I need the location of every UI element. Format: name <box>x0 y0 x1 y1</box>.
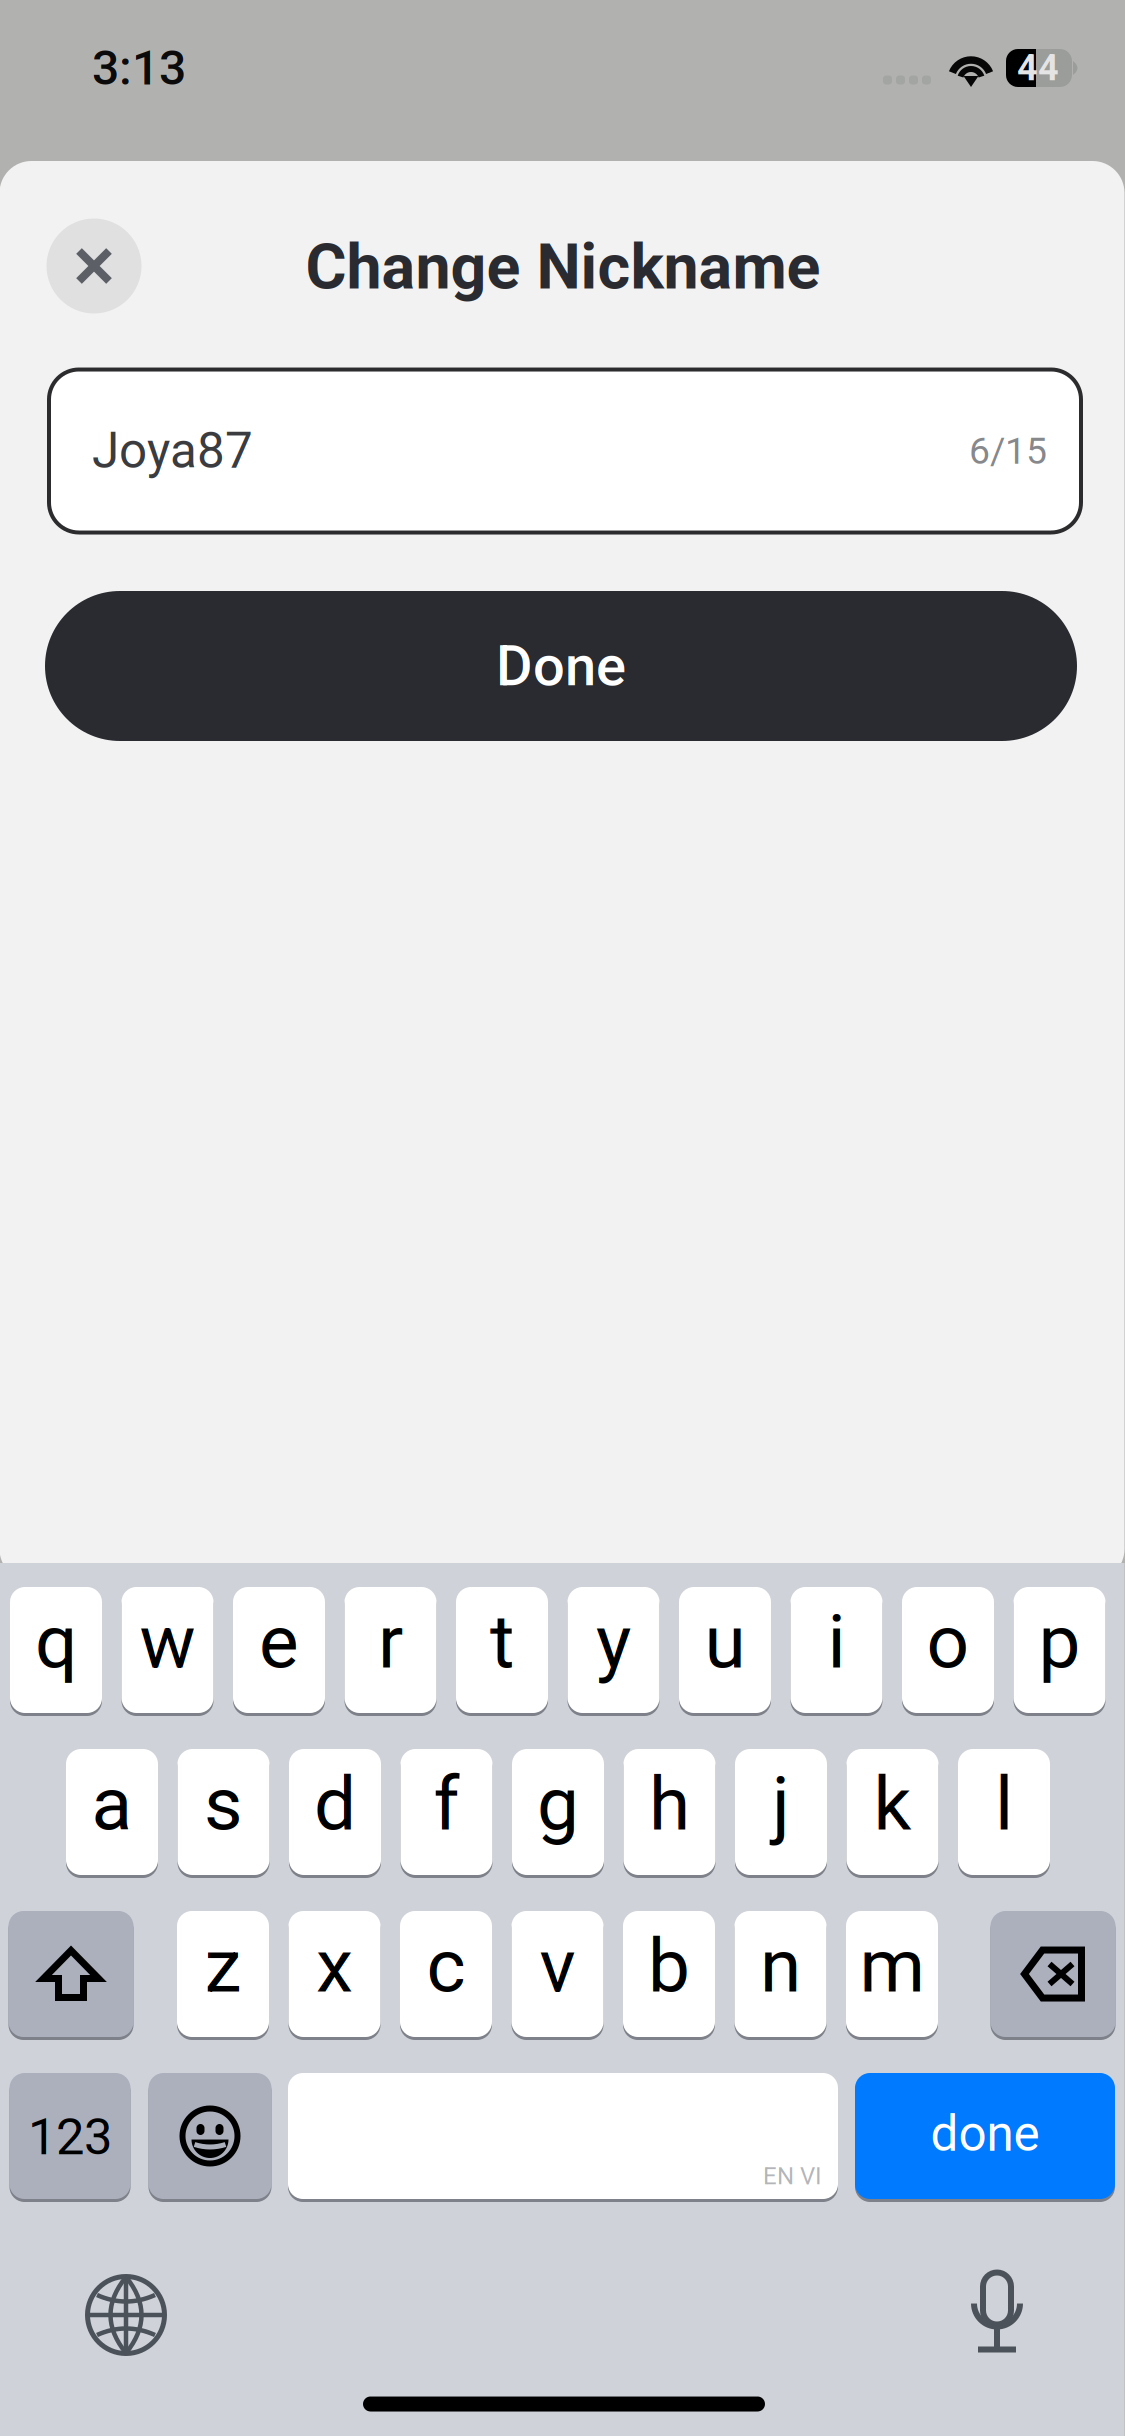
button[interactable]: w <box>121 1587 213 1713</box>
staticText: l <box>995 1760 1013 1848</box>
button[interactable]: done <box>855 2073 1115 2199</box>
button[interactable]: p <box>1013 1587 1105 1713</box>
button[interactable]: n <box>734 1911 826 2037</box>
staticText: Change Nickname <box>305 230 820 304</box>
staticText: k <box>873 1760 911 1848</box>
staticText: d <box>314 1760 356 1848</box>
staticText: x <box>316 1922 353 2010</box>
button[interactable]: Delete <box>990 1911 1115 2037</box>
staticText: p <box>1038 1598 1080 1686</box>
button[interactable]: v <box>511 1911 603 2037</box>
staticText: n <box>760 1922 801 2010</box>
button[interactable]: z <box>177 1911 269 2037</box>
button[interactable]: Done <box>45 591 1077 741</box>
button[interactable]: k <box>846 1749 938 1875</box>
staticText: v <box>539 1922 575 2010</box>
button[interactable]: m <box>846 1911 938 2037</box>
staticText: u <box>704 1598 745 1686</box>
button[interactable]: f <box>400 1749 492 1875</box>
button[interactable]: Close <box>46 218 141 313</box>
staticText: 44 <box>1017 47 1059 89</box>
button[interactable]: Space <box>288 2073 838 2199</box>
button[interactable]: x <box>288 1911 380 2037</box>
button[interactable]: c <box>400 1911 492 2037</box>
button[interactable]: s <box>177 1749 269 1875</box>
button[interactable]: y <box>567 1587 659 1713</box>
staticText: z <box>204 1922 241 2010</box>
button[interactable]: Next keyboard <box>85 2274 167 2356</box>
button[interactable]: q <box>10 1587 102 1713</box>
staticText: done <box>930 2105 1039 2163</box>
staticText: e <box>259 1598 299 1686</box>
staticText: EN VI <box>763 2162 822 2190</box>
staticText: 6/15 <box>969 429 1047 473</box>
staticText: y <box>596 1598 631 1686</box>
staticText: s <box>204 1760 243 1848</box>
button[interactable]: t <box>456 1587 548 1713</box>
staticText: j <box>772 1760 790 1848</box>
staticText: Done <box>496 633 626 699</box>
staticText: w <box>139 1598 195 1686</box>
button[interactable]: g <box>512 1749 604 1875</box>
staticText: b <box>648 1922 690 2010</box>
staticText: q <box>35 1598 77 1686</box>
staticText: t <box>490 1598 514 1686</box>
button[interactable]: u <box>679 1587 771 1713</box>
staticText: f <box>433 1760 459 1848</box>
staticText: h <box>649 1760 690 1848</box>
staticText: 3:13 <box>92 40 186 96</box>
staticText: g <box>537 1760 579 1848</box>
button[interactable]: h <box>623 1749 715 1875</box>
button[interactable]: j <box>735 1749 827 1875</box>
button[interactable]: r <box>344 1587 436 1713</box>
button[interactable]: o <box>902 1587 994 1713</box>
staticText: m <box>859 1922 924 2010</box>
button[interactable]: b <box>623 1911 715 2037</box>
button[interactable]: 123 <box>9 2073 130 2199</box>
staticText: c <box>426 1922 465 2010</box>
button[interactable]: Shift <box>8 1911 133 2037</box>
button[interactable]: a <box>66 1749 158 1875</box>
staticText: 123 <box>28 2107 112 2167</box>
button[interactable]: Emoji <box>148 2073 271 2199</box>
staticText: Joya87 <box>92 422 253 480</box>
staticText: i <box>827 1598 845 1686</box>
button[interactable]: Dictate <box>969 2270 1025 2355</box>
staticText: a <box>91 1760 132 1848</box>
button[interactable]: l <box>958 1749 1050 1875</box>
staticText: o <box>926 1598 969 1686</box>
button[interactable]: i <box>790 1587 882 1713</box>
staticText: r <box>378 1598 403 1686</box>
button[interactable]: d <box>289 1749 381 1875</box>
button[interactable]: e <box>233 1587 325 1713</box>
